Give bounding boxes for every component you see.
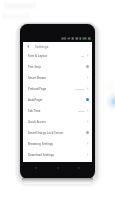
- button[interactable]: SmartCharge Lock Screen: [23, 127, 92, 138]
- button[interactable]: Tab Time: [23, 105, 92, 116]
- staticText: Quick Access: [28, 120, 46, 124]
- button[interactable]: Smart Brown: [23, 72, 92, 83]
- staticText: 3 Pages: [75, 87, 85, 90]
- button[interactable]: Browsing Settings: [23, 138, 92, 149]
- staticText: AutoPager: [28, 98, 43, 102]
- staticText: Aa: [81, 54, 85, 57]
- button[interactable]: AutoPager: [23, 94, 92, 105]
- button[interactable]: Download Settings: [23, 149, 92, 160]
- staticText: Font & Layout: [28, 54, 48, 58]
- button[interactable]: Back: [27, 45, 30, 48]
- button[interactable]: Font & Layout: [23, 50, 92, 61]
- button[interactable]: Quick Access: [23, 116, 92, 127]
- staticText: Text Strip: [28, 65, 41, 69]
- staticText: never: [78, 109, 85, 112]
- staticText: Smart Brown: [28, 76, 46, 80]
- staticText: Preload Page: [28, 87, 47, 91]
- button[interactable]: Preload Page: [23, 83, 92, 94]
- staticText: Settings: [35, 44, 49, 49]
- staticText: Browsing Settings: [28, 142, 53, 146]
- button[interactable]: Text Strip: [23, 61, 92, 72]
- staticText: SmartCharge Lock Screen: [28, 131, 64, 135]
- staticText: Tab Time: [28, 109, 41, 113]
- staticText: Download Settings: [28, 153, 54, 157]
